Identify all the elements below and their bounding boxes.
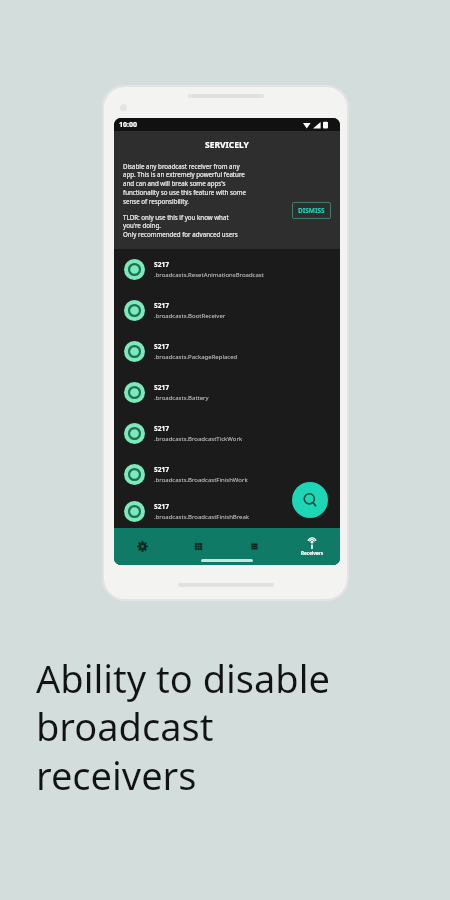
staticText: .broadcasts.Battery (154, 394, 209, 402)
staticText: TLDR: only use this if you know what you… (123, 213, 238, 239)
button[interactable]: S217 (114, 454, 340, 495)
button[interactable]: Search (292, 482, 328, 518)
staticText: S217 (154, 260, 169, 269)
button[interactable]: Settings (114, 528, 170, 565)
staticText: .broadcasts.BroadcastFinishWork (154, 476, 248, 484)
staticText: Disable any broadcast receiver from any … (123, 162, 247, 206)
button[interactable]: S217 (114, 372, 340, 413)
staticText: S217 (154, 342, 169, 351)
staticText: Ability to disable broadcast receivers (36, 652, 330, 802)
staticText: .broadcasts.BroadcastTickWork (154, 435, 243, 443)
staticText: Receivers (301, 550, 323, 556)
staticText: S217 (154, 465, 169, 474)
button[interactable]: Receivers (283, 528, 340, 565)
staticText: SERVICELY (205, 139, 249, 151)
button[interactable]: S217 (114, 495, 340, 528)
button[interactable]: S217 (114, 413, 340, 454)
staticText: .broadcasts.PackageReplaced (154, 353, 238, 361)
staticText: S217 (154, 383, 169, 392)
button[interactable]: S217 (114, 290, 340, 331)
button[interactable]: S217 (114, 249, 340, 290)
staticText: .broadcasts.BootReceiver (154, 312, 226, 320)
staticText: .broadcasts.ResetAnimationsBroadcast (154, 271, 264, 279)
staticText: S217 (154, 301, 169, 310)
staticText: S217 (154, 424, 169, 433)
button[interactable]: Apps grid (170, 528, 226, 565)
staticText: 10:00 (119, 120, 137, 130)
staticText: S217 (154, 502, 169, 511)
button[interactable]: List (226, 528, 283, 565)
staticText: DISMISS (298, 206, 325, 215)
button[interactable]: DISMISS (292, 202, 331, 219)
button[interactable]: S217 (114, 331, 340, 372)
staticText: .broadcasts.BroadcastFinishBreak (154, 513, 250, 521)
